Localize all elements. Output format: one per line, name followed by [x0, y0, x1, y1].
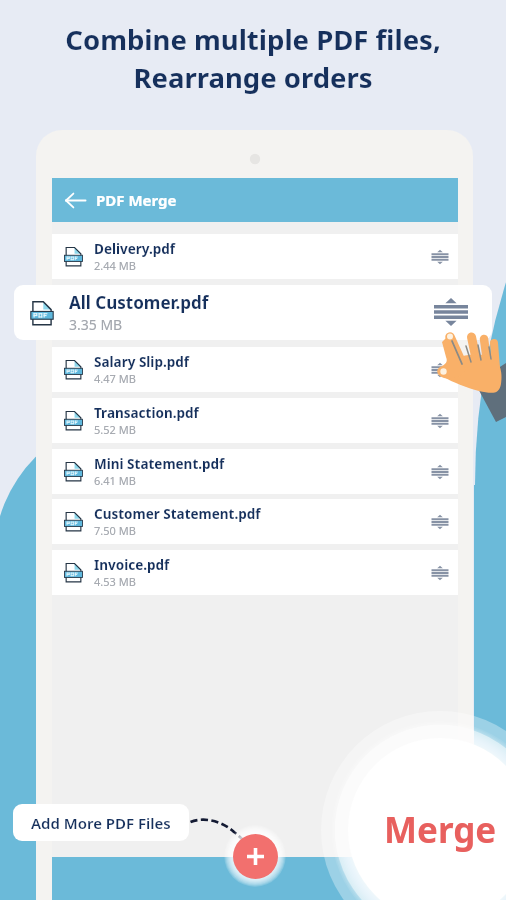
staticText: 7.50 MB [94, 523, 136, 538]
staticText: Delivery.pdf [94, 240, 176, 258]
button[interactable]: Reorder [424, 285, 478, 339]
staticText: Mini Statement.pdf [94, 455, 225, 473]
staticText: 4.47 MB [94, 371, 136, 386]
staticText: 6.41 MB [94, 473, 136, 488]
button[interactable]: Merge [348, 738, 506, 900]
staticText: Rearrange orders [133, 59, 373, 96]
button[interactable]: Mini Statement.pdf [52, 449, 458, 494]
button[interactable]: Salary Slip.pdf [52, 347, 458, 392]
staticText: 5.52 MB [94, 422, 136, 437]
staticText: Transaction.pdf [94, 404, 199, 422]
staticText: 3.35 MB [69, 315, 123, 334]
staticText: All Customer.pdf [69, 291, 209, 314]
button[interactable]: Back [60, 185, 90, 215]
button[interactable]: Back [52, 178, 458, 222]
staticText: Invoice.pdf [94, 556, 170, 574]
staticText: 4.53 MB [94, 574, 136, 589]
button[interactable]: Add files [233, 834, 278, 879]
button[interactable]: Delivery.pdf [52, 234, 458, 279]
button[interactable]: All Customer.pdf [14, 285, 492, 340]
button[interactable]: Customer Statement.pdf [52, 499, 458, 544]
button[interactable]: Add More PDF Files [13, 804, 189, 841]
staticText: Merge [384, 806, 497, 854]
staticText: Combine multiple PDF files, [65, 21, 441, 58]
button[interactable]: Invoice.pdf [52, 550, 458, 595]
staticText: Salary Slip.pdf [94, 353, 189, 371]
staticText: PDF Merge [96, 190, 177, 210]
button[interactable]: Transaction.pdf [52, 398, 458, 443]
staticText: 2.44 MB [94, 258, 136, 273]
staticText: Add More PDF Files [31, 813, 171, 833]
staticText: Customer Statement.pdf [94, 505, 261, 523]
